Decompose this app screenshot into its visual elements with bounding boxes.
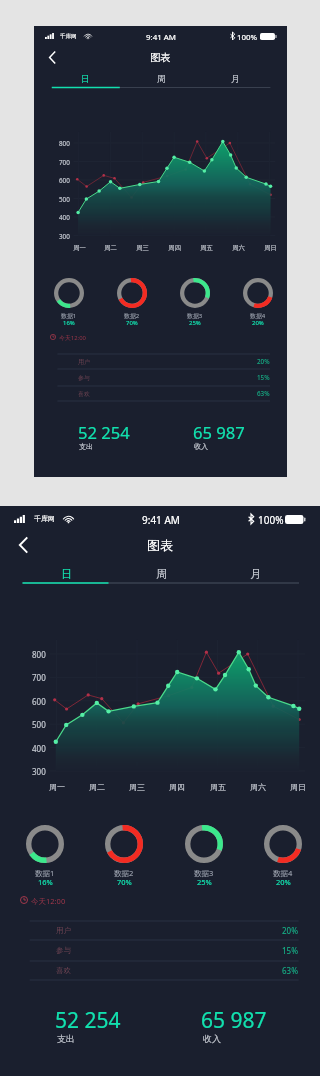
staticText: 100% (237, 32, 258, 41)
button[interactable]: 参与 (34, 369, 287, 386)
staticText: 月 (250, 567, 261, 581)
staticText: 9:41 AM (146, 32, 176, 41)
staticText: 700 (59, 158, 70, 166)
staticText: 周二 (104, 244, 117, 252)
staticText: 300 (32, 766, 46, 776)
staticText: 周四 (169, 782, 185, 792)
button[interactable]: 用户 (0, 921, 320, 940)
staticText: 参与 (78, 374, 90, 381)
button[interactable]: 日 (62, 70, 109, 89)
staticText: 千库网 (34, 514, 55, 523)
button[interactable]: 数据1 (54, 278, 84, 322)
staticText: 63% (282, 965, 298, 976)
button[interactable]: 月 (225, 562, 285, 586)
staticText: 月 (231, 74, 240, 85)
staticText: 周二 (89, 782, 105, 792)
button[interactable]: 数据4 (264, 825, 302, 881)
staticText: 用户 (78, 358, 90, 365)
staticText: 70% (126, 319, 138, 327)
staticText: 16% (38, 877, 53, 887)
staticText: 数据4 (250, 312, 266, 320)
staticText: 图表 (150, 51, 171, 64)
staticText: 支出 (79, 442, 94, 451)
button[interactable]: 周 (131, 562, 191, 586)
staticText: 周日 (264, 244, 277, 252)
staticText: 数据1 (61, 312, 77, 320)
staticText: 300 (59, 232, 70, 240)
staticText: 63% (257, 389, 270, 398)
staticText: 400 (59, 213, 70, 221)
button[interactable]: 数据1 (26, 825, 64, 881)
staticText: 周 (156, 567, 167, 581)
button[interactable]: 周 (138, 70, 185, 89)
button[interactable]: 喜欢 (0, 961, 320, 980)
button[interactable]: 52 254 (56, 421, 151, 456)
button[interactable]: 用户 (34, 354, 287, 369)
staticText: 9:41 AM (142, 513, 180, 525)
staticText: 600 (59, 176, 70, 184)
staticText: 周六 (250, 782, 266, 792)
staticText: 20% (257, 357, 270, 366)
staticText: 16% (63, 319, 75, 327)
staticText: 周六 (232, 244, 245, 252)
staticText: 数据2 (114, 868, 134, 878)
button[interactable]: 数据4 (243, 278, 273, 322)
staticText: 70% (117, 877, 132, 887)
staticText: 日 (61, 567, 72, 581)
staticText: 25% (197, 877, 212, 887)
staticText: 400 (32, 743, 46, 753)
button[interactable]: 65 987 (174, 1006, 294, 1050)
staticText: 700 (32, 672, 46, 682)
staticText: 52 254 (78, 421, 130, 442)
button[interactable]: 52 254 (28, 1006, 148, 1050)
button[interactable]: 月 (212, 70, 259, 89)
staticText: 数据4 (273, 868, 293, 878)
staticText: 20% (252, 319, 264, 327)
staticText: 日 (81, 74, 90, 85)
staticText: 数据1 (35, 868, 55, 878)
staticText: 15% (282, 945, 298, 956)
button[interactable]: 数据3 (185, 825, 223, 881)
staticText: 数据2 (124, 312, 140, 320)
staticText: 800 (32, 649, 46, 659)
button[interactable]: 数据3 (180, 278, 210, 322)
button[interactable]: 数据2 (117, 278, 147, 322)
staticText: 周一 (49, 782, 65, 792)
staticText: 20% (276, 877, 291, 887)
staticText: 用户 (56, 926, 71, 935)
staticText: 52 254 (55, 1006, 121, 1032)
staticText: 65 987 (193, 421, 245, 442)
staticText: 周一 (73, 244, 86, 252)
staticText: 千库网 (60, 33, 77, 40)
staticText: 周三 (129, 782, 145, 792)
staticText: 20% (282, 925, 298, 936)
staticText: 100% (258, 513, 284, 525)
button[interactable]: 数据2 (105, 825, 143, 881)
staticText: 65 987 (201, 1006, 267, 1032)
staticText: 参与 (56, 946, 71, 955)
staticText: 15% (257, 373, 270, 382)
staticText: 今天12:00 (31, 896, 66, 906)
button[interactable]: Back (40, 47, 64, 68)
staticText: 收入 (203, 1033, 221, 1044)
staticText: 图表 (147, 537, 173, 553)
staticText: 数据3 (194, 868, 214, 878)
staticText: 800 (59, 139, 70, 147)
staticText: 周 (157, 74, 166, 85)
staticText: 收入 (194, 442, 209, 451)
button[interactable]: 参与 (0, 940, 320, 961)
staticText: 喜欢 (56, 966, 71, 975)
staticText: 500 (59, 195, 70, 203)
staticText: 今天12:00 (59, 334, 86, 342)
staticText: 周四 (168, 244, 181, 252)
staticText: 周五 (210, 782, 226, 792)
staticText: 周三 (136, 244, 149, 252)
staticText: 支出 (57, 1033, 75, 1044)
button[interactable]: 日 (36, 562, 96, 586)
staticText: 喜欢 (78, 390, 90, 397)
staticText: 数据3 (187, 312, 203, 320)
button[interactable]: Back (8, 532, 38, 558)
button[interactable]: 喜欢 (34, 386, 287, 401)
staticText: 600 (32, 696, 46, 706)
button[interactable]: 65 987 (171, 421, 266, 456)
